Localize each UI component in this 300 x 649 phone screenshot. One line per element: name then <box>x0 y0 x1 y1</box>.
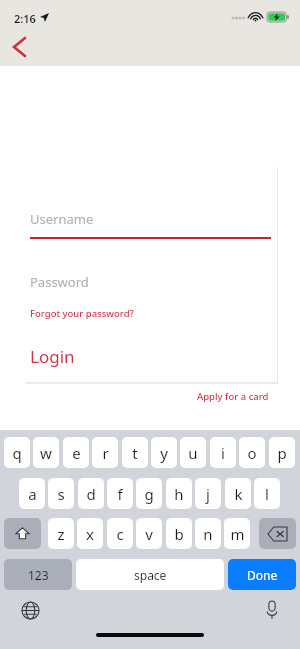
staticText: f <box>117 484 123 504</box>
button[interactable]: Back <box>4 32 34 62</box>
staticText: Forgot your password? <box>30 307 134 320</box>
button[interactable]: z <box>48 518 74 549</box>
staticText: z <box>57 524 65 544</box>
staticText: s <box>57 484 65 504</box>
button[interactable]: r <box>92 437 118 468</box>
staticText: u <box>188 443 198 463</box>
staticText: m <box>230 524 245 544</box>
button[interactable]: Apply for a card <box>196 389 270 404</box>
staticText: n <box>203 524 213 544</box>
staticText: e <box>72 443 81 463</box>
button[interactable]: space <box>76 559 224 590</box>
button[interactable]: d <box>78 478 104 509</box>
staticText: space <box>134 567 167 583</box>
staticText: b <box>174 524 184 544</box>
button[interactable]: a <box>19 478 45 509</box>
button[interactable]: b <box>166 518 192 549</box>
staticText: x <box>86 524 94 544</box>
button[interactable]: Change keyboard language <box>18 598 42 622</box>
staticText: Done <box>247 567 278 583</box>
staticText: j <box>206 484 210 504</box>
button[interactable]: s <box>48 478 74 509</box>
staticText: l <box>265 484 269 504</box>
staticText: q <box>12 443 22 463</box>
staticText: r <box>102 443 109 463</box>
staticText: k <box>234 484 243 504</box>
button[interactable]: y <box>151 437 177 468</box>
button[interactable]: o <box>239 437 265 468</box>
button[interactable]: p <box>269 437 295 468</box>
staticText: t <box>132 443 138 463</box>
button[interactable]: 123 <box>4 559 72 590</box>
button[interactable]: m <box>224 518 250 549</box>
button[interactable]: v <box>136 518 162 549</box>
button[interactable]: h <box>166 478 192 509</box>
staticText: i <box>221 443 225 463</box>
button[interactable]: e <box>63 437 89 468</box>
button[interactable]: Dictate <box>260 598 284 622</box>
button[interactable]: f <box>107 478 133 509</box>
staticText: y <box>160 443 168 463</box>
staticText: Username <box>30 210 94 228</box>
staticText: a <box>28 484 37 504</box>
staticText: Password <box>30 273 89 291</box>
button[interactable]: x <box>77 518 103 549</box>
button[interactable]: t <box>122 437 148 468</box>
button[interactable]: Backspace <box>259 518 296 549</box>
button[interactable]: c <box>107 518 133 549</box>
staticText: o <box>247 443 257 463</box>
button[interactable]: q <box>4 437 30 468</box>
button[interactable]: u <box>180 437 206 468</box>
staticText: h <box>174 484 184 504</box>
staticText: 2:16 <box>14 11 36 26</box>
button[interactable]: g <box>136 478 162 509</box>
button[interactable]: l <box>254 478 280 509</box>
staticText: v <box>145 524 153 544</box>
button[interactable]: n <box>195 518 221 549</box>
button[interactable]: k <box>225 478 251 509</box>
button[interactable]: w <box>33 437 59 468</box>
button[interactable]: Login <box>30 345 75 368</box>
button[interactable]: i <box>210 437 236 468</box>
staticText: p <box>277 443 287 463</box>
button[interactable]: Shift <box>4 518 41 549</box>
staticText: g <box>144 484 154 504</box>
staticText: 123 <box>28 567 49 583</box>
button[interactable]: j <box>195 478 221 509</box>
button[interactable]: Forgot your password? <box>30 307 134 320</box>
staticText: d <box>86 484 96 504</box>
button[interactable]: Done <box>228 559 296 590</box>
staticText: c <box>116 524 124 544</box>
staticText: Apply for a card <box>197 390 269 403</box>
staticText: Login <box>30 345 75 368</box>
staticText: w <box>40 443 52 463</box>
